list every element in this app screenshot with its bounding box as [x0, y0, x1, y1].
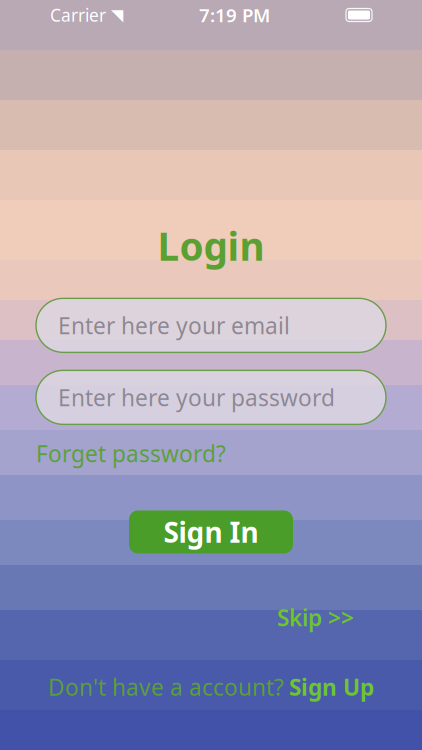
staticText: Sign Up	[289, 672, 374, 702]
staticText: ◥	[106, 6, 123, 24]
button[interactable]: Skip >>	[277, 602, 354, 632]
button[interactable]: Don't have a account?	[48, 672, 374, 702]
button[interactable]: Forget password?	[36, 434, 226, 472]
staticText: 7:19 PM	[199, 3, 270, 27]
staticText: Forget password?	[36, 438, 226, 468]
staticText: Sign In	[163, 513, 258, 551]
button[interactable]: Enter here your password	[36, 370, 386, 424]
staticText: Carrier	[50, 3, 106, 26]
staticText: Skip >>	[277, 602, 354, 632]
staticText: Enter here your email	[58, 310, 290, 340]
staticText: Don't have a account?	[48, 672, 284, 702]
button[interactable]: Enter here your email	[36, 298, 386, 352]
button[interactable]: Sign In	[129, 510, 293, 553]
staticText: Enter here your password	[58, 382, 335, 412]
staticText: Login	[157, 220, 264, 271]
